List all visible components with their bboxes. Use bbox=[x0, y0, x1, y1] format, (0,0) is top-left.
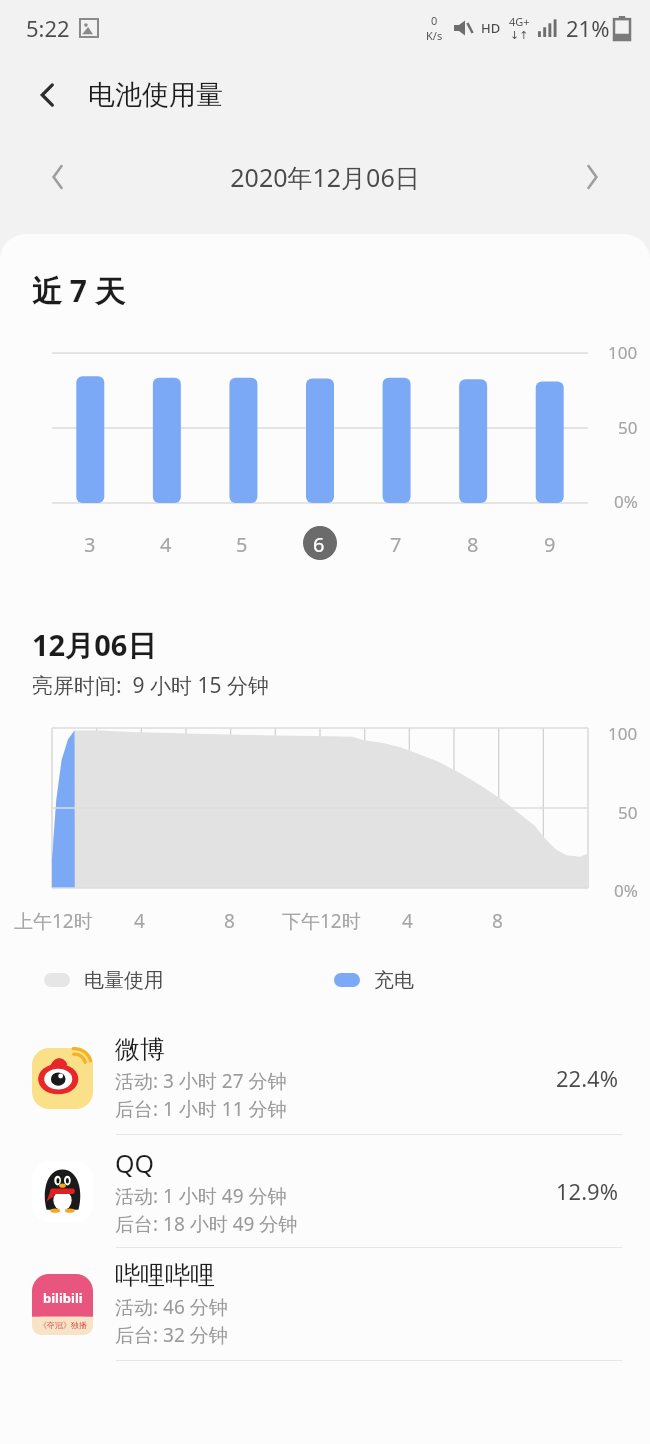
button[interactable]: 微博 bbox=[0, 1022, 650, 1135]
staticText: 5:22 bbox=[26, 13, 70, 43]
staticText: 近 7 天 bbox=[32, 270, 125, 311]
staticText: 3 bbox=[84, 531, 96, 558]
staticText: 亮屏时间: 9 小时 15 分钟 bbox=[32, 671, 269, 700]
staticText: 《夺冠》独播 bbox=[39, 1320, 87, 1330]
staticText: 21% bbox=[566, 13, 610, 43]
staticText: 22.4% bbox=[556, 1063, 618, 1093]
staticText: 活动: 46 分钟 bbox=[115, 1294, 228, 1320]
staticText: HD bbox=[481, 19, 501, 37]
staticText: 微博 bbox=[115, 1034, 165, 1065]
staticText: 2020年12月06日 bbox=[82, 160, 568, 194]
staticText: 8 bbox=[224, 908, 235, 934]
staticText: 后台: 18 小时 49 分钟 bbox=[115, 1211, 298, 1237]
button[interactable]: Previous day bbox=[34, 153, 82, 201]
button[interactable]: bilibili bbox=[0, 1248, 650, 1361]
button[interactable]: Back bbox=[26, 73, 70, 117]
staticText: 活动: 3 小时 27 分钟 bbox=[115, 1068, 287, 1094]
staticText: 0 bbox=[431, 13, 438, 28]
staticText: 5 bbox=[236, 531, 248, 558]
staticText: 0% bbox=[614, 879, 638, 902]
staticText: 7 bbox=[390, 531, 402, 558]
staticText: 4 bbox=[134, 908, 145, 934]
staticText: ↓↑ bbox=[510, 29, 529, 42]
staticText: 电量使用 bbox=[84, 968, 164, 993]
staticText: 12.9% bbox=[556, 1176, 618, 1206]
staticText: 活动: 1 小时 49 分钟 bbox=[115, 1183, 287, 1209]
staticText: 电池使用量 bbox=[88, 78, 223, 112]
staticText: 8 bbox=[492, 908, 503, 934]
staticText: QQ bbox=[115, 1146, 155, 1180]
staticText: 50 bbox=[618, 416, 638, 439]
staticText: 100 bbox=[608, 341, 638, 364]
staticText: bilibili bbox=[43, 1289, 83, 1307]
staticText: 4 bbox=[160, 531, 172, 558]
staticText: 哔哩哔哩 bbox=[115, 1260, 215, 1291]
staticText: 4G+ bbox=[509, 14, 530, 29]
staticText: 6 bbox=[313, 531, 325, 558]
staticText: 8 bbox=[467, 531, 479, 558]
button[interactable]: QQ bbox=[0, 1135, 650, 1248]
staticText: 上午12时 bbox=[14, 908, 93, 934]
staticText: 后台: 32 分钟 bbox=[115, 1322, 228, 1348]
staticText: 100 bbox=[608, 722, 638, 745]
staticText: 4 bbox=[402, 908, 413, 934]
button[interactable]: Next day bbox=[568, 153, 616, 201]
staticText: 下午12时 bbox=[282, 908, 361, 934]
staticText: 9 bbox=[544, 531, 556, 558]
staticText: 12月06日 bbox=[32, 625, 157, 665]
staticText: 后台: 1 小时 11 分钟 bbox=[115, 1096, 287, 1122]
staticText: 0% bbox=[614, 490, 638, 513]
staticText: 充电 bbox=[374, 968, 414, 993]
staticText: 50 bbox=[618, 801, 638, 824]
staticText: K/s bbox=[426, 28, 443, 43]
